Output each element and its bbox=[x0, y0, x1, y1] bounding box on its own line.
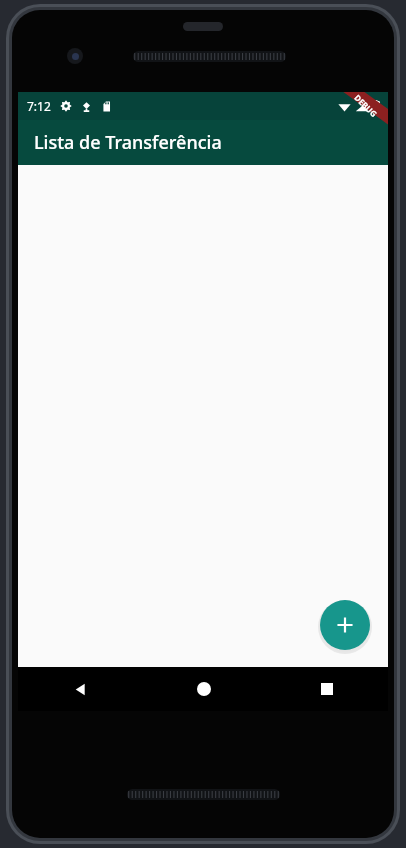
button[interactable]: Recents bbox=[265, 667, 388, 711]
button[interactable]: Home bbox=[142, 667, 265, 711]
staticText: Lista de Transferência bbox=[34, 130, 222, 155]
button[interactable]: Back bbox=[18, 667, 142, 711]
staticText: DEBUG bbox=[352, 92, 380, 119]
staticText: 7:12 bbox=[27, 98, 51, 114]
button[interactable]: Adicionar transferência bbox=[320, 600, 370, 650]
